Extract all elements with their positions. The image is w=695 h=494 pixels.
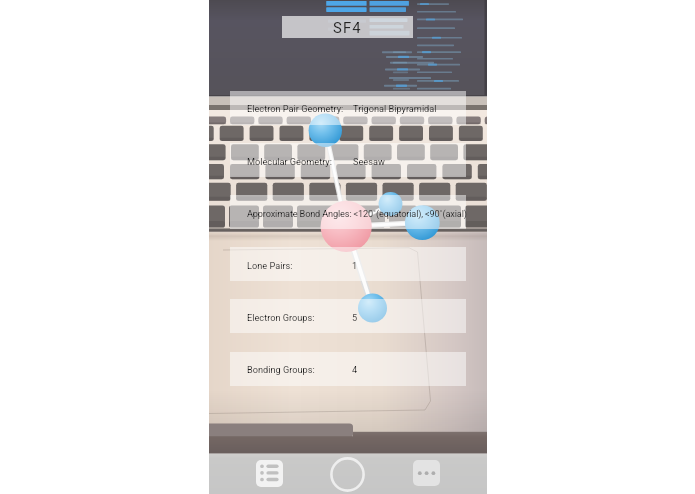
staticText: 1 xyxy=(352,260,358,271)
staticText: Molecular Geometry: xyxy=(247,156,332,167)
staticText: Lone Pairs: xyxy=(247,260,293,271)
staticText: Seesaw xyxy=(353,156,385,167)
staticText: Bonding Groups: xyxy=(247,364,315,375)
button[interactable] xyxy=(230,299,466,333)
button[interactable] xyxy=(230,143,466,177)
staticText: Trigonal Bipyramidal xyxy=(353,103,437,114)
staticText: 4 xyxy=(352,364,358,375)
staticText: 5 xyxy=(352,312,358,323)
staticText: Electron Pair Geometry: xyxy=(247,103,344,114)
staticText: Approximate Bond Angles: <120˚(equatoria… xyxy=(247,208,467,219)
button[interactable]: Recent apps xyxy=(256,460,283,487)
button[interactable]: Home xyxy=(330,457,365,492)
staticText: Electron Groups: xyxy=(247,312,315,323)
button[interactable] xyxy=(230,91,466,125)
button[interactable] xyxy=(230,195,466,229)
button[interactable]: More options xyxy=(413,460,440,486)
button[interactable] xyxy=(230,247,466,281)
staticText: SF4 xyxy=(333,19,362,36)
button[interactable]: SF4 xyxy=(282,16,413,38)
button[interactable] xyxy=(230,352,466,386)
